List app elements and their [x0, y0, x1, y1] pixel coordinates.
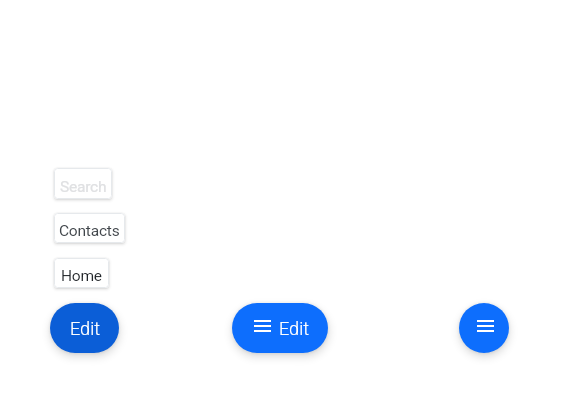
staticText: Edit	[279, 318, 310, 339]
button[interactable]: Search	[54, 168, 112, 199]
staticText: Home	[61, 267, 102, 285]
staticText: Contacts	[59, 222, 120, 240]
button[interactable]: Home	[54, 258, 109, 288]
staticText: Search	[60, 178, 107, 196]
staticText: Edit	[70, 318, 101, 339]
button[interactable]: Contacts	[54, 213, 125, 243]
button[interactable]: Edit	[50, 303, 119, 353]
button[interactable]: Edit	[232, 303, 328, 353]
button[interactable]: Menu	[459, 303, 509, 353]
